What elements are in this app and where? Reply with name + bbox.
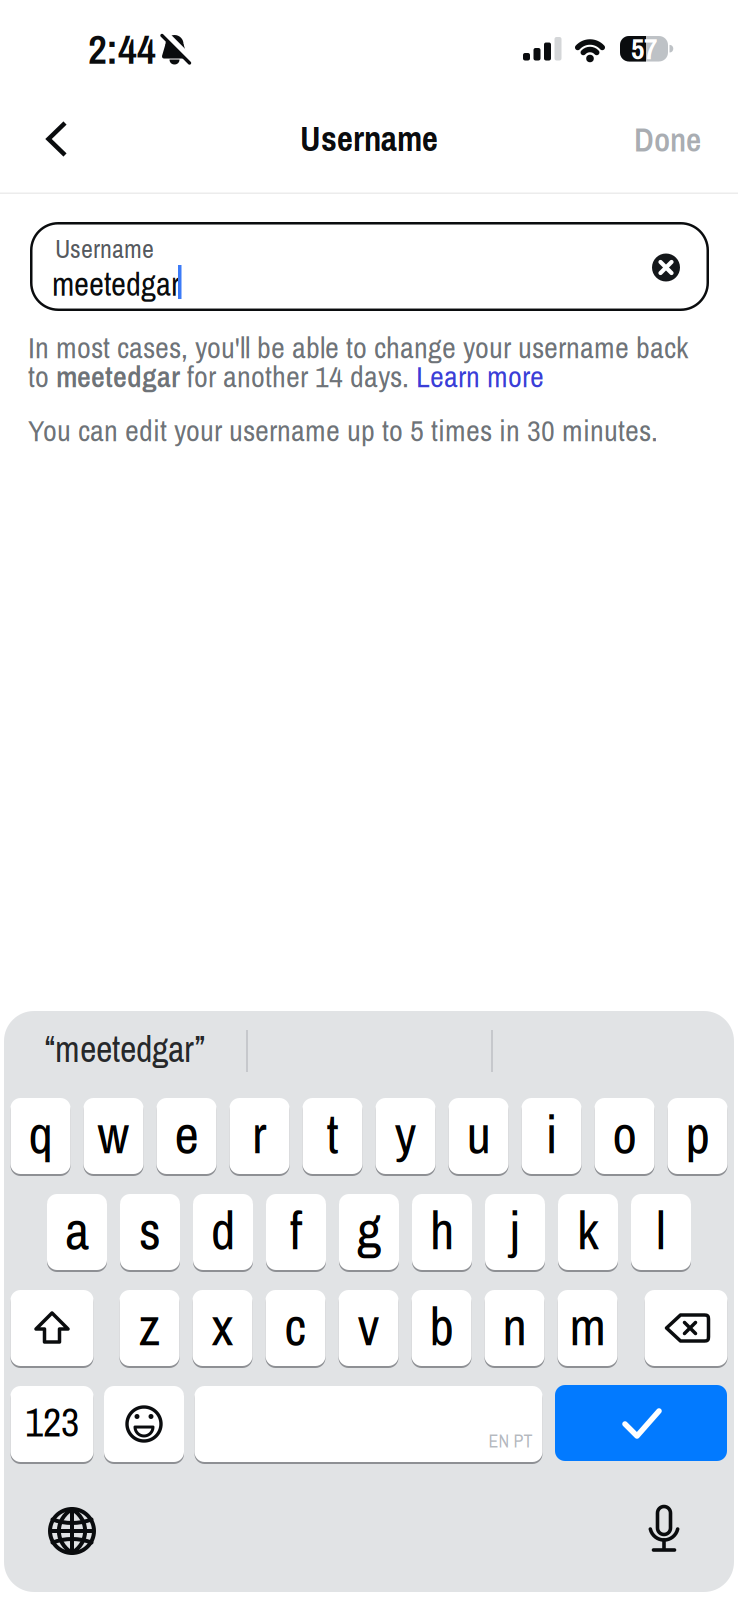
- button[interactable]: Space: [194, 1385, 542, 1463]
- staticText: f: [290, 1194, 302, 1266]
- staticText: p: [685, 1098, 709, 1170]
- staticText: to: [28, 356, 56, 397]
- button[interactable]: l: [631, 1193, 691, 1271]
- button[interactable]: f: [266, 1193, 326, 1271]
- button[interactable]: Dictation: [636, 1503, 692, 1559]
- button[interactable]: Delete: [644, 1289, 727, 1367]
- button[interactable]: 123: [10, 1385, 93, 1463]
- button[interactable]: s: [120, 1193, 180, 1271]
- staticText: d: [211, 1194, 235, 1266]
- button[interactable]: o: [594, 1097, 654, 1175]
- button[interactable]: w: [83, 1097, 143, 1175]
- staticText: i: [545, 1098, 557, 1170]
- button[interactable]: Return: [555, 1385, 727, 1461]
- button[interactable]: h: [412, 1193, 472, 1271]
- button[interactable]: t: [302, 1097, 362, 1175]
- staticText: c: [284, 1290, 306, 1362]
- staticText: e: [174, 1098, 198, 1170]
- staticText: k: [577, 1194, 599, 1266]
- staticText: Username: [55, 231, 154, 266]
- staticText: m: [569, 1290, 605, 1362]
- staticText: w: [97, 1098, 129, 1170]
- staticText: x: [211, 1290, 233, 1362]
- staticText: You can edit your username up to 5 times…: [28, 410, 658, 451]
- button[interactable]: Clear text: [652, 253, 680, 281]
- button[interactable]: k: [558, 1193, 618, 1271]
- button[interactable]: c: [265, 1289, 325, 1367]
- button[interactable]: Emoji: [104, 1385, 184, 1463]
- staticText: 57: [631, 29, 657, 68]
- staticText: o: [612, 1098, 636, 1170]
- button[interactable]: b: [411, 1289, 471, 1367]
- button[interactable]: j: [485, 1193, 545, 1271]
- staticText: 2:44: [88, 21, 156, 77]
- button[interactable]: d: [193, 1193, 253, 1271]
- staticText: s: [139, 1194, 161, 1266]
- button[interactable]: y: [375, 1097, 435, 1175]
- staticText: v: [357, 1290, 379, 1362]
- staticText: In most cases, you'll be able to change …: [28, 327, 688, 368]
- button[interactable]: q: [10, 1097, 70, 1175]
- staticText: u: [466, 1098, 490, 1170]
- staticText: 123: [25, 1395, 79, 1449]
- button[interactable]: v: [338, 1289, 398, 1367]
- staticText: meetedgar: [52, 262, 180, 306]
- button[interactable]: g: [339, 1193, 399, 1271]
- button[interactable]: Shift: [10, 1289, 93, 1367]
- button[interactable]: n: [484, 1289, 544, 1367]
- button[interactable]: m: [557, 1289, 617, 1367]
- staticText: n: [502, 1290, 526, 1362]
- button[interactable]: a: [47, 1193, 107, 1271]
- button[interactable]: u: [448, 1097, 508, 1175]
- button[interactable]: Learn more: [416, 356, 544, 397]
- button[interactable]: p: [667, 1097, 727, 1175]
- staticText: j: [510, 1194, 520, 1266]
- staticText: t: [326, 1098, 338, 1170]
- button[interactable]: z: [119, 1289, 179, 1367]
- staticText: for another 14 days.: [180, 356, 416, 397]
- button[interactable]: “meetedgar”: [4, 1027, 246, 1071]
- staticText: q: [28, 1098, 52, 1170]
- staticText: “meetedgar”: [45, 1025, 205, 1073]
- staticText: z: [138, 1290, 160, 1362]
- staticText: EN PT: [488, 1429, 532, 1453]
- staticText: h: [430, 1194, 454, 1266]
- button[interactable]: r: [229, 1097, 289, 1175]
- button[interactable]: Done: [0, 117, 701, 162]
- staticText: a: [65, 1194, 89, 1266]
- staticText: b: [429, 1290, 453, 1362]
- button[interactable]: Next keyboard: [44, 1503, 100, 1559]
- staticText: Username: [300, 115, 438, 162]
- staticText: l: [656, 1194, 666, 1266]
- button[interactable]: Username, meetedgar: [30, 222, 709, 311]
- staticText: Learn more: [416, 356, 544, 397]
- staticText: g: [357, 1194, 381, 1266]
- button[interactable]: e: [156, 1097, 216, 1175]
- staticText: Done: [634, 117, 701, 162]
- button[interactable]: Back: [39, 119, 83, 159]
- button[interactable]: x: [192, 1289, 252, 1367]
- staticText: meetedgar: [56, 356, 180, 397]
- button[interactable]: i: [521, 1097, 581, 1175]
- staticText: y: [394, 1098, 416, 1170]
- staticText: r: [252, 1098, 267, 1170]
